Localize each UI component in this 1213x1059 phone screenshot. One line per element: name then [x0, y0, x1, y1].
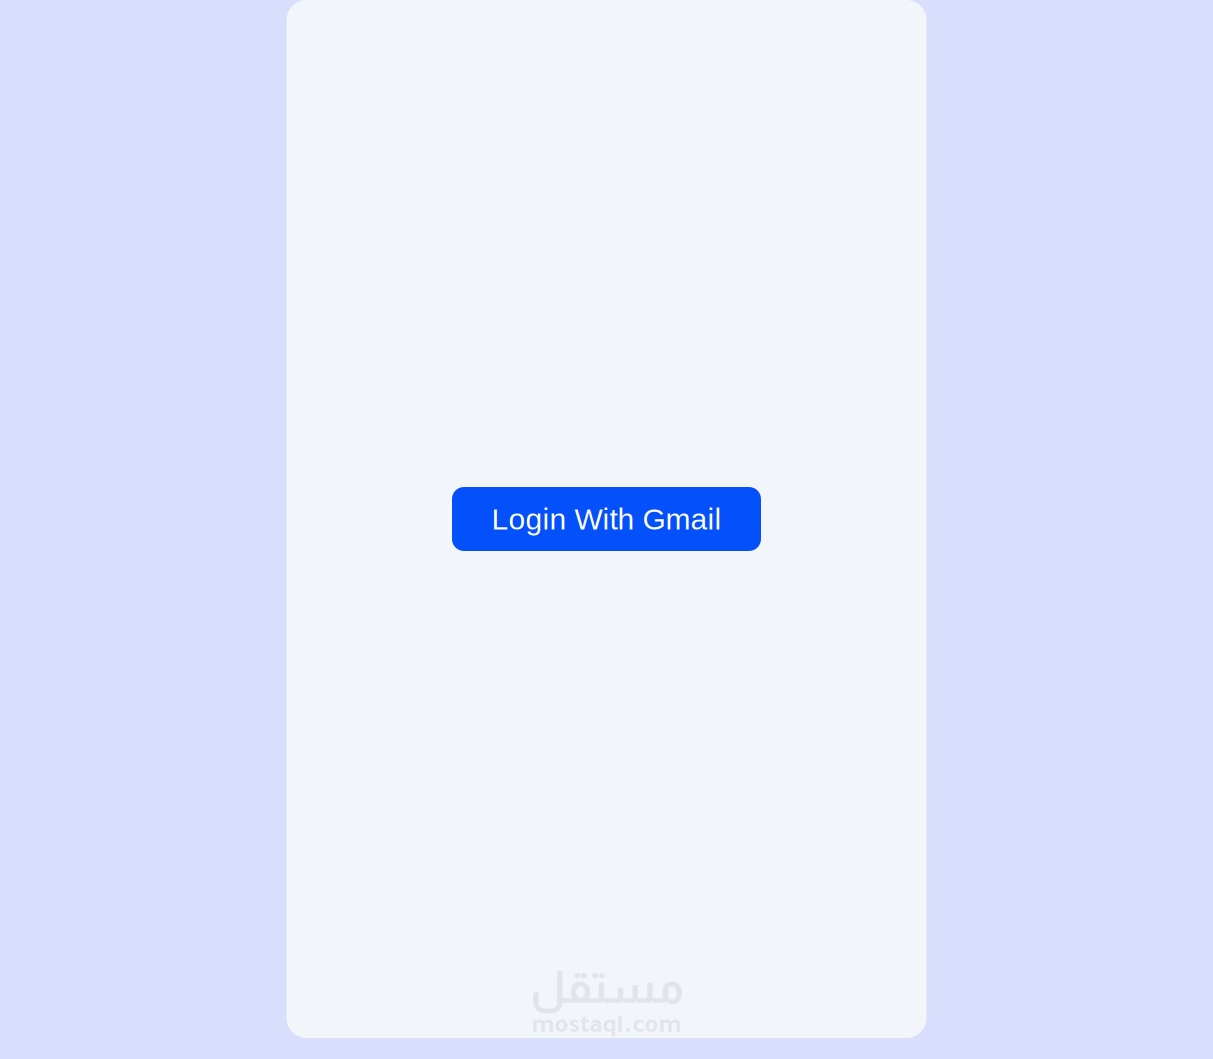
- button[interactable]: Login With Gmail: [452, 487, 761, 551]
- staticText: Login With Gmail: [491, 502, 721, 536]
- staticText: مستقل: [529, 963, 683, 1012]
- staticText: mostaql.com: [531, 1015, 681, 1041]
